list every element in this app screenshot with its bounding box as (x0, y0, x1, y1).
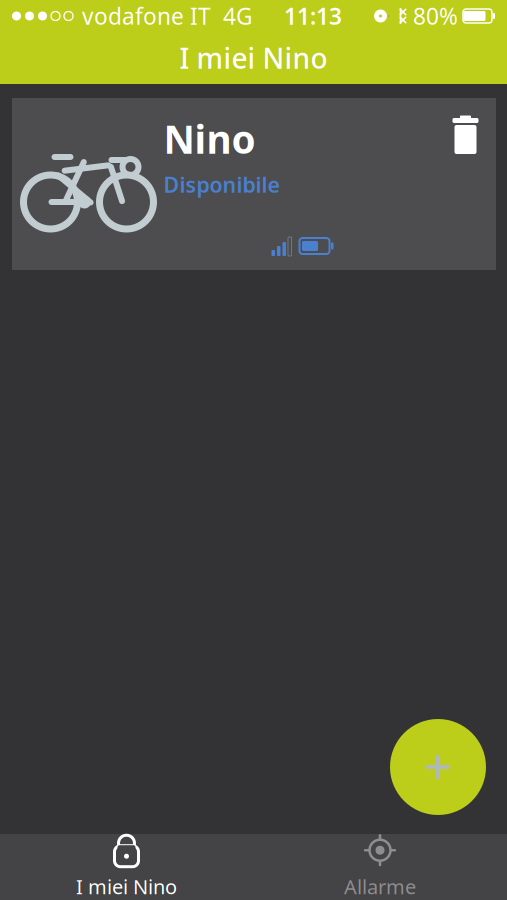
staticText: Nino (163, 113, 255, 164)
button[interactable]: Nino (12, 98, 496, 270)
staticText: Disponibile (163, 170, 279, 199)
button[interactable]: Elimina (448, 114, 482, 158)
staticText: Allarme (344, 873, 416, 900)
staticText: I miei Nino (76, 873, 177, 900)
staticText: I miei Nino (179, 39, 327, 77)
button[interactable]: Aggiungi (390, 719, 486, 815)
staticText: 4G (223, 1, 253, 31)
staticText: 80% (413, 1, 458, 31)
staticText: vodafone IT (82, 1, 211, 31)
button[interactable]: I miei Nino (0, 834, 253, 900)
button[interactable]: Allarme (253, 834, 507, 900)
staticText: 11:13 (284, 1, 342, 31)
